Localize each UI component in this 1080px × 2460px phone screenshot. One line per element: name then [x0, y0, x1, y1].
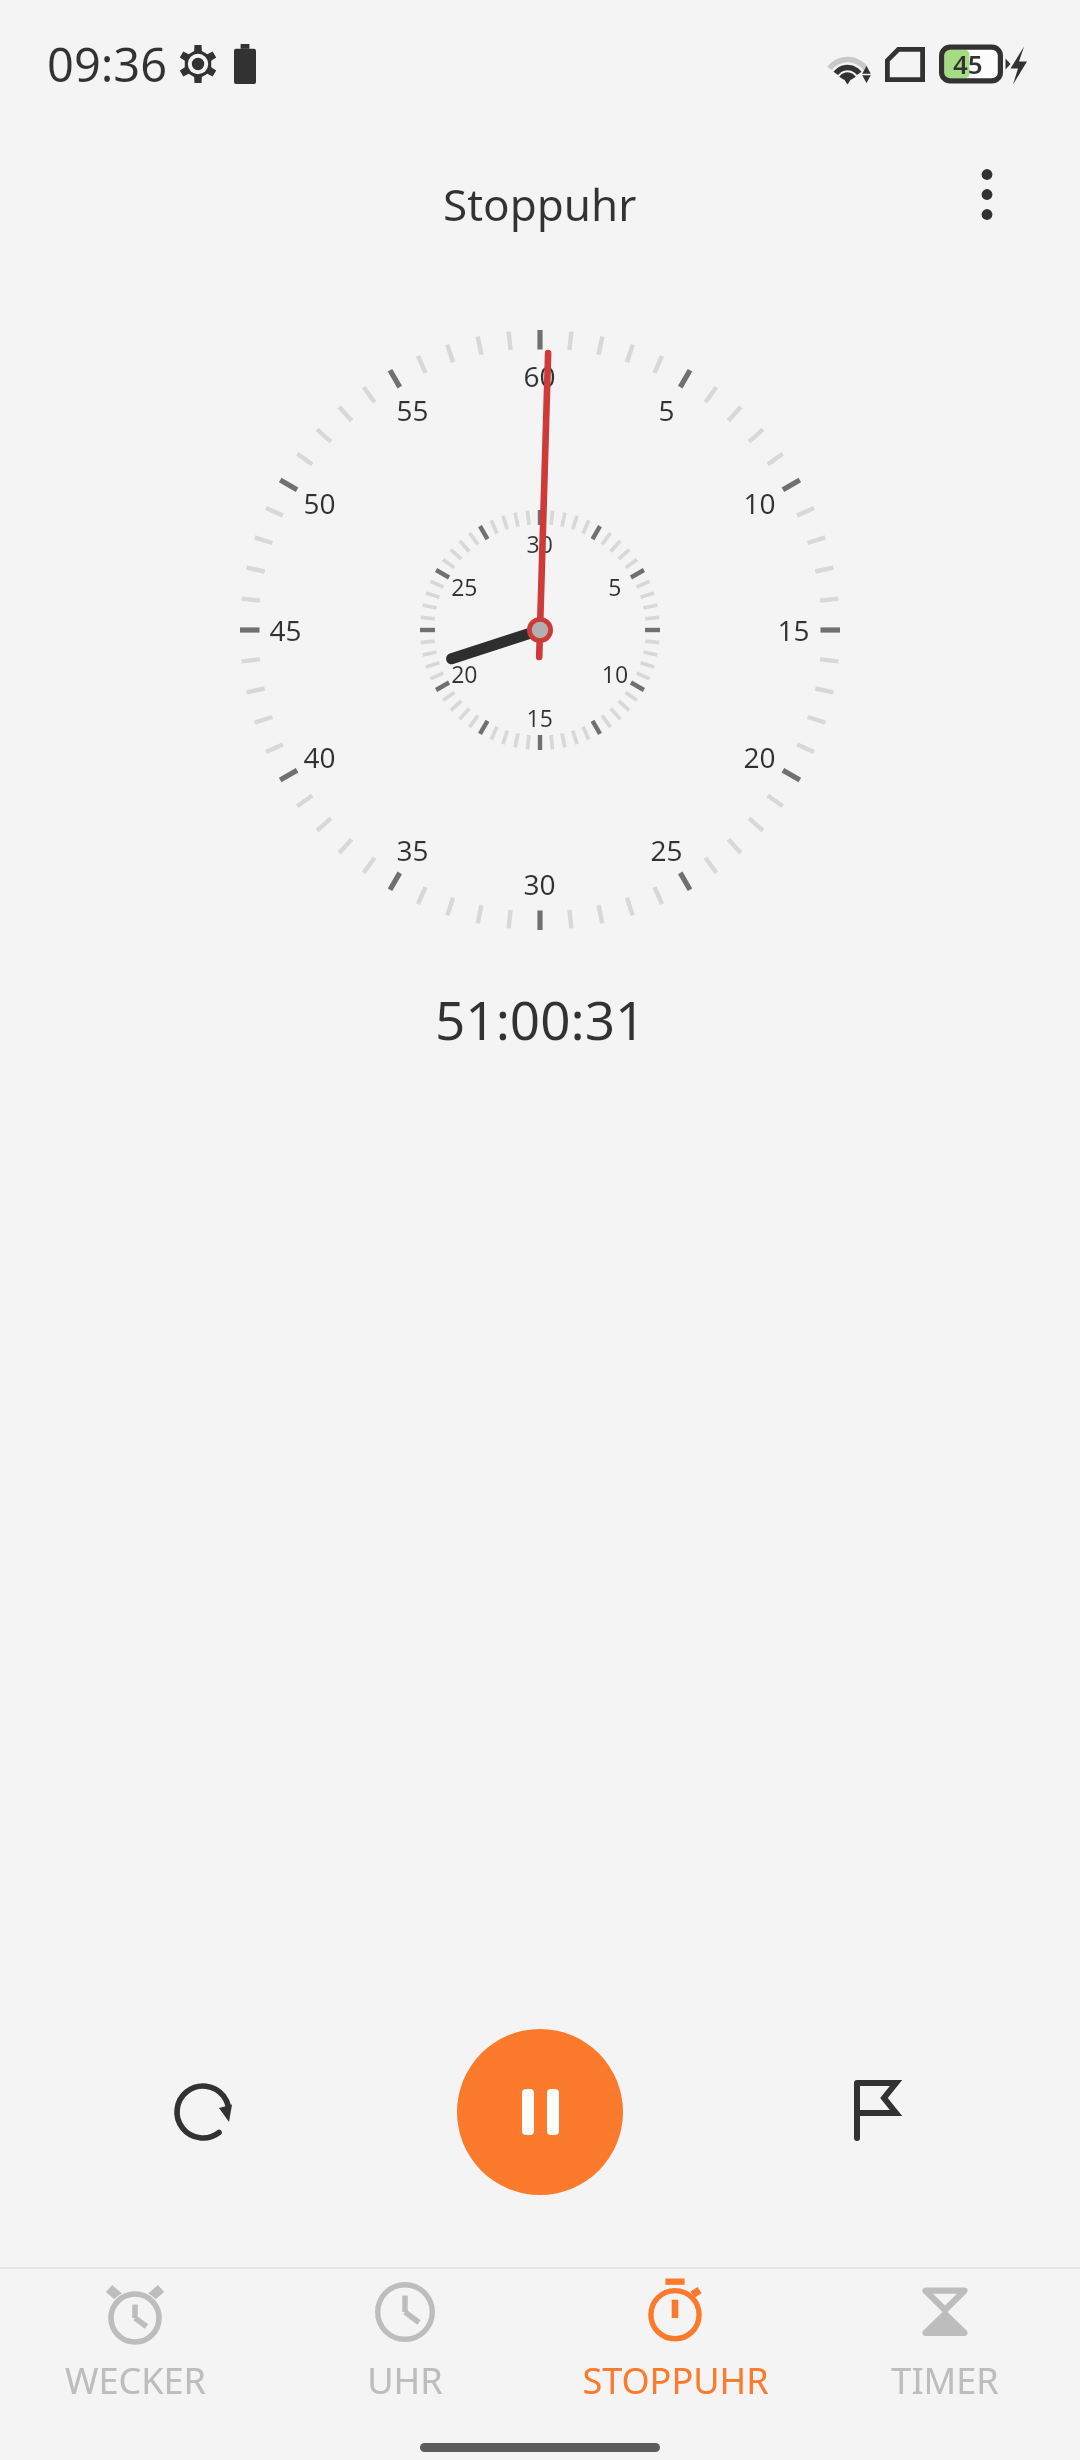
staticText: TIMER — [891, 2356, 999, 2405]
button[interactable]: TIMER — [810, 2269, 1080, 2460]
staticText: UHR — [367, 2356, 443, 2405]
staticText: 51:00:31 — [435, 983, 646, 1055]
button[interactable]: WECKER — [0, 2269, 270, 2460]
button[interactable]: UHR — [270, 2269, 540, 2460]
staticText: Stoppuhr — [443, 174, 637, 234]
staticText: 45 — [953, 46, 983, 81]
staticText: STOPPUHR — [582, 2356, 769, 2405]
button[interactable]: Pause — [457, 2029, 623, 2195]
button[interactable]: STOPPUHR — [540, 2269, 810, 2460]
button[interactable]: Lap — [816, 2050, 940, 2174]
staticText: 09:36 — [47, 32, 168, 96]
button[interactable]: Reset — [143, 2052, 263, 2172]
button[interactable]: More options — [937, 145, 1037, 245]
staticText: WECKER — [65, 2356, 206, 2405]
